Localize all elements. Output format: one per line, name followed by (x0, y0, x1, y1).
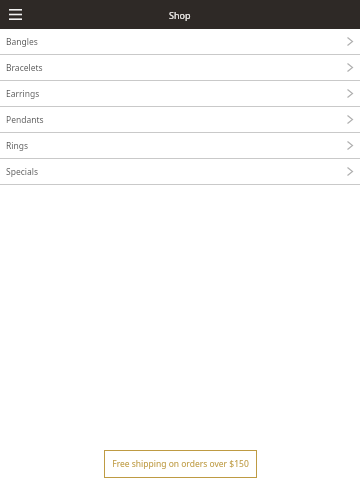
button[interactable]: Specials (0, 159, 360, 184)
staticText: Specials (6, 166, 38, 178)
button[interactable]: Rings (0, 133, 360, 158)
staticText: Shop (169, 9, 191, 21)
button[interactable]: Pendants (0, 107, 360, 132)
staticText: Rings (6, 140, 29, 152)
button[interactable]: Free shipping on orders over $150 (104, 450, 257, 478)
button[interactable]: Bracelets (0, 55, 360, 80)
staticText: Earrings (6, 88, 40, 100)
staticText: Free shipping on orders over $150 (112, 458, 249, 470)
staticText: Bracelets (6, 62, 43, 74)
staticText: Pendants (6, 114, 44, 126)
button[interactable]: Earrings (0, 81, 360, 106)
button[interactable]: Open navigation menu (0, 0, 30, 29)
staticText: Bangles (6, 36, 38, 48)
button[interactable]: Bangles (0, 29, 360, 54)
